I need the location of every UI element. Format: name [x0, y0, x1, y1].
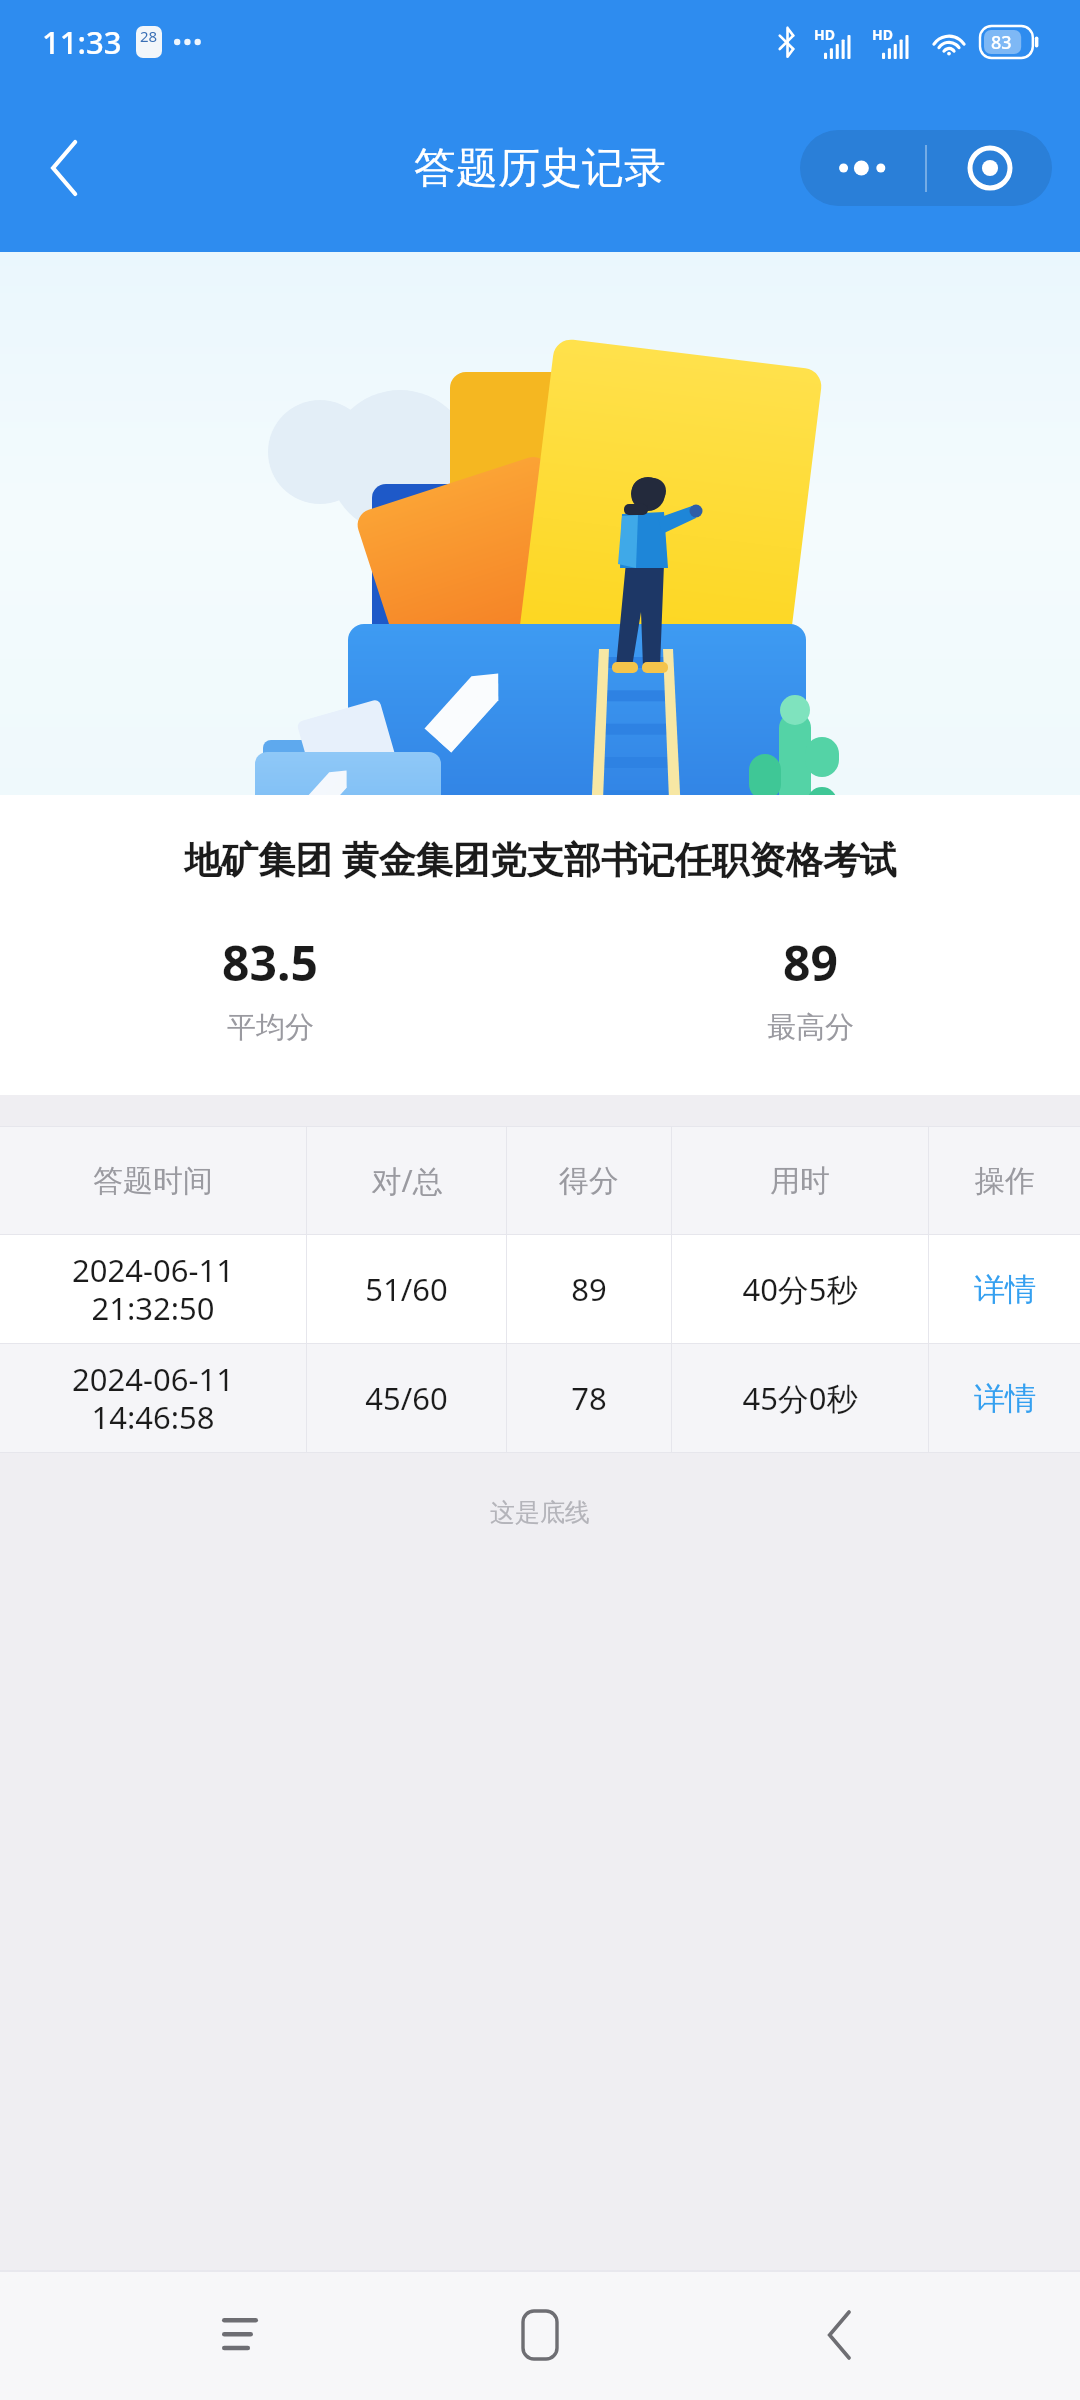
staticText: 用时 — [770, 1162, 830, 1200]
staticText: 对/总 — [371, 1160, 443, 1201]
staticText: 详情 — [974, 1379, 1036, 1418]
staticText: 答题时间 — [93, 1162, 213, 1200]
staticText: 45/60 — [365, 1377, 448, 1419]
staticText: 地矿集团 黄金集团党支部书记任职资格考试 — [184, 833, 897, 884]
button[interactable]: Back — [780, 2275, 900, 2395]
staticText: 操作 — [975, 1162, 1035, 1200]
staticText: 45分0秒 — [742, 1377, 858, 1419]
staticText: HD — [814, 25, 835, 44]
button[interactable]: Home — [480, 2275, 600, 2395]
staticText: HD — [872, 25, 893, 44]
button[interactable]: Recents — [180, 2275, 300, 2395]
staticText: 83.5 — [222, 930, 318, 995]
staticText: 得分 — [559, 1162, 619, 1200]
button[interactable]: More options — [800, 130, 1052, 206]
button[interactable]: Back — [20, 123, 110, 213]
staticText: 平均分 — [227, 1009, 314, 1046]
staticText: 最高分 — [767, 1009, 854, 1046]
button[interactable]: 详情 — [929, 1344, 1080, 1452]
staticText: 详情 — [974, 1270, 1036, 1309]
staticText: 这是底线 — [0, 1497, 1080, 1528]
staticText: 89 — [571, 1268, 607, 1310]
staticText: 11:33 — [42, 21, 122, 63]
button[interactable]: 详情 — [929, 1235, 1080, 1343]
staticText: 2024-06-11 14:46:58 — [72, 1358, 234, 1438]
staticText: 89 — [783, 930, 838, 995]
staticText: 答题历史记录 — [414, 142, 666, 195]
staticText: 2024-06-11 21:32:50 — [72, 1249, 234, 1329]
staticText: 40分5秒 — [742, 1268, 858, 1310]
staticText: 78 — [571, 1377, 607, 1419]
staticText: 83 — [991, 30, 1012, 55]
staticText: 28 — [140, 26, 158, 46]
staticText: 51/60 — [365, 1268, 448, 1310]
